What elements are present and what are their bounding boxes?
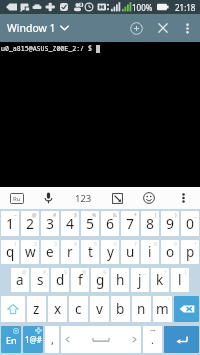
staticText: a	[16, 271, 24, 289]
staticText: n	[137, 300, 146, 318]
staticText: (	[155, 212, 157, 219]
button[interactable]: 1	[1, 211, 19, 236]
staticText: b	[116, 300, 125, 318]
button[interactable]: .	[143, 326, 162, 353]
button[interactable]: 6	[101, 211, 119, 236]
staticText: +	[194, 241, 197, 248]
staticText: '	[168, 297, 170, 304]
staticText: f	[78, 271, 83, 289]
button[interactable]: Space	[61, 326, 141, 353]
staticText: 4	[74, 241, 77, 248]
staticText: c	[75, 300, 82, 318]
button[interactable]: 9	[161, 211, 179, 236]
staticText: *	[134, 212, 137, 219]
button[interactable]: Window 1	[0, 14, 77, 42]
button[interactable]: 7	[121, 211, 139, 236]
staticText: e	[46, 243, 54, 261]
button[interactable]: Close window	[150, 15, 176, 41]
staticText: @	[32, 212, 37, 219]
button[interactable]: z	[27, 296, 46, 322]
button[interactable]: e	[41, 240, 59, 264]
staticText: g	[96, 271, 105, 289]
button[interactable]: Shift	[1, 296, 25, 322]
button[interactable]: 3	[41, 211, 59, 236]
staticText: t	[88, 243, 93, 261]
button[interactable]: s	[31, 268, 49, 292]
button[interactable]: More options	[176, 17, 198, 39]
staticText: En	[6, 334, 17, 346]
button[interactable]: 1@#	[23, 326, 43, 353]
staticText: i	[148, 243, 152, 261]
button[interactable]: l	[171, 268, 189, 292]
staticText: .	[151, 332, 154, 347]
staticText: #	[53, 212, 57, 219]
button[interactable]: k	[151, 268, 169, 292]
staticText: )	[175, 212, 177, 219]
staticText: 3	[46, 214, 55, 233]
staticText: -	[125, 269, 127, 276]
button[interactable]: r	[61, 240, 79, 264]
staticText: u	[126, 243, 135, 261]
staticText: m	[156, 300, 169, 318]
staticText: &	[113, 212, 117, 219]
button[interactable]: 4	[61, 211, 79, 236]
staticText: z	[33, 300, 40, 318]
staticText: 9	[174, 241, 177, 248]
button[interactable]: w	[21, 240, 39, 264]
button[interactable]: New window	[122, 14, 150, 42]
button[interactable]: d	[51, 268, 69, 292]
button[interactable]: t	[81, 240, 99, 264]
button[interactable]: b	[111, 296, 130, 322]
button[interactable]: j	[131, 268, 149, 292]
button[interactable]: Emoji	[137, 187, 161, 209]
staticText: r	[67, 243, 73, 261]
staticText: 1	[6, 214, 15, 233]
staticText: w	[25, 243, 36, 261]
button[interactable]: c	[69, 296, 88, 322]
button[interactable]: p	[181, 240, 199, 264]
button[interactable]: Enter	[164, 326, 199, 353]
button[interactable]: f	[71, 268, 89, 292]
button[interactable]: v	[90, 296, 109, 322]
button[interactable]: 5	[81, 211, 99, 236]
staticText: u0_a815@ASUS_Z00E_2:/ $	[1, 44, 96, 53]
button[interactable]: x	[48, 296, 67, 322]
button[interactable]: More keyboard options	[171, 187, 195, 209]
button[interactable]: i	[141, 240, 159, 264]
staticText: 100%	[132, 2, 153, 13]
button[interactable]: u	[121, 240, 139, 264]
button[interactable]: g	[91, 268, 109, 292]
button[interactable]: q	[1, 240, 19, 264]
button[interactable]: o	[161, 240, 179, 264]
button[interactable]: y	[101, 240, 119, 264]
button[interactable]: Numbers	[71, 187, 95, 209]
staticText: 21:18	[175, 2, 196, 13]
staticText: 5	[86, 214, 95, 233]
staticText: 7	[134, 241, 137, 248]
button[interactable]: a	[11, 268, 29, 292]
button[interactable]: Backspace	[174, 296, 199, 322]
button[interactable]: 0	[181, 211, 199, 236]
staticText: &	[103, 269, 107, 276]
button[interactable]: En	[1, 326, 21, 353]
staticText: h	[116, 271, 125, 289]
button[interactable]: Input language	[5, 187, 29, 209]
staticText: Window 1	[7, 21, 56, 35]
staticText: 5	[94, 241, 97, 248]
button[interactable]: 8	[141, 211, 159, 236]
button[interactable]: h	[111, 268, 129, 292]
button[interactable]: Handwriting	[105, 187, 129, 209]
button[interactable]: ,	[45, 326, 59, 353]
button[interactable]: 2	[21, 211, 39, 236]
staticText: _	[194, 212, 197, 219]
staticText: ,	[51, 332, 54, 347]
button[interactable]: m	[153, 296, 172, 322]
staticText: 9	[166, 214, 175, 233]
staticText: %	[82, 269, 87, 276]
staticText: q	[6, 243, 15, 261]
staticText: k	[156, 271, 164, 289]
button[interactable]: n	[132, 296, 151, 322]
staticText: $	[64, 269, 67, 276]
staticText: _	[144, 269, 147, 276]
button[interactable]: Voice input	[36, 187, 60, 209]
